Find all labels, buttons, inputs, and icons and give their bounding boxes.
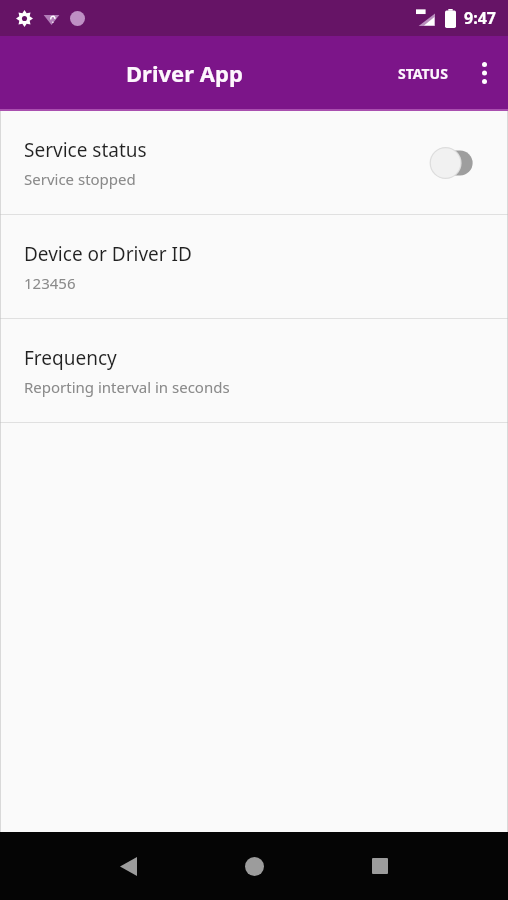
- button[interactable]: Recent apps: [347, 833, 413, 899]
- button[interactable]: Home: [221, 833, 287, 899]
- staticText: Service status: [24, 137, 147, 163]
- button[interactable]: Service status toggle: [428, 143, 484, 183]
- staticText: Service stopped: [24, 169, 136, 189]
- staticText: Device or Driver ID: [24, 241, 192, 267]
- staticText: Reporting interval in seconds: [24, 377, 230, 397]
- staticText: Driver App: [126, 58, 243, 88]
- button[interactable]: Service status: [0, 111, 508, 214]
- button[interactable]: Frequency: [0, 319, 508, 422]
- button[interactable]: Back: [95, 833, 161, 899]
- button[interactable]: STATUS: [386, 50, 460, 97]
- button[interactable]: Device or Driver ID: [0, 215, 508, 318]
- staticText: STATUS: [398, 64, 448, 83]
- staticText: 9:47: [464, 7, 496, 29]
- staticText: Frequency: [24, 345, 117, 371]
- button[interactable]: More options: [460, 49, 508, 97]
- staticText: 123456: [24, 273, 76, 293]
